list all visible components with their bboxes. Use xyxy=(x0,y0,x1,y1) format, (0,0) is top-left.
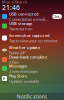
button[interactable]: Downloads complete xyxy=(0,55,64,64)
button[interactable]: Play Store xyxy=(0,73,64,84)
staticText: Charge only xyxy=(52,14,62,19)
staticText: Tap to turn on xyxy=(9,26,32,31)
staticText: USB connected xyxy=(9,11,38,16)
staticText: Play Store xyxy=(9,73,27,78)
staticText: Downloads complete xyxy=(9,54,47,59)
button[interactable]: Notifications xyxy=(0,93,64,100)
button[interactable]: USB connected xyxy=(0,12,64,21)
staticText: Screenshot captured xyxy=(9,33,49,38)
button[interactable]: USB storage xyxy=(0,21,64,31)
staticText: 2 new messages xyxy=(9,68,38,74)
staticText: Connected as a media device xyxy=(9,16,48,22)
staticText: 21:46 xyxy=(2,3,20,12)
staticText: Messages xyxy=(9,63,27,68)
staticText: Notifications xyxy=(16,93,47,100)
staticText: 3 files xyxy=(9,59,19,65)
button[interactable]: Weather update xyxy=(0,45,64,55)
staticText: Tap to view your screenshot xyxy=(9,38,57,43)
staticText: Updates available xyxy=(9,78,39,84)
staticText: Sunny 24° xyxy=(9,50,26,55)
button[interactable]: Messages xyxy=(0,64,64,73)
staticText: Mon, 6 March xyxy=(2,0,27,5)
staticText: USB storage xyxy=(9,21,32,26)
button[interactable]: Screenshot captured xyxy=(0,31,64,45)
staticText: Weather update xyxy=(9,45,40,50)
